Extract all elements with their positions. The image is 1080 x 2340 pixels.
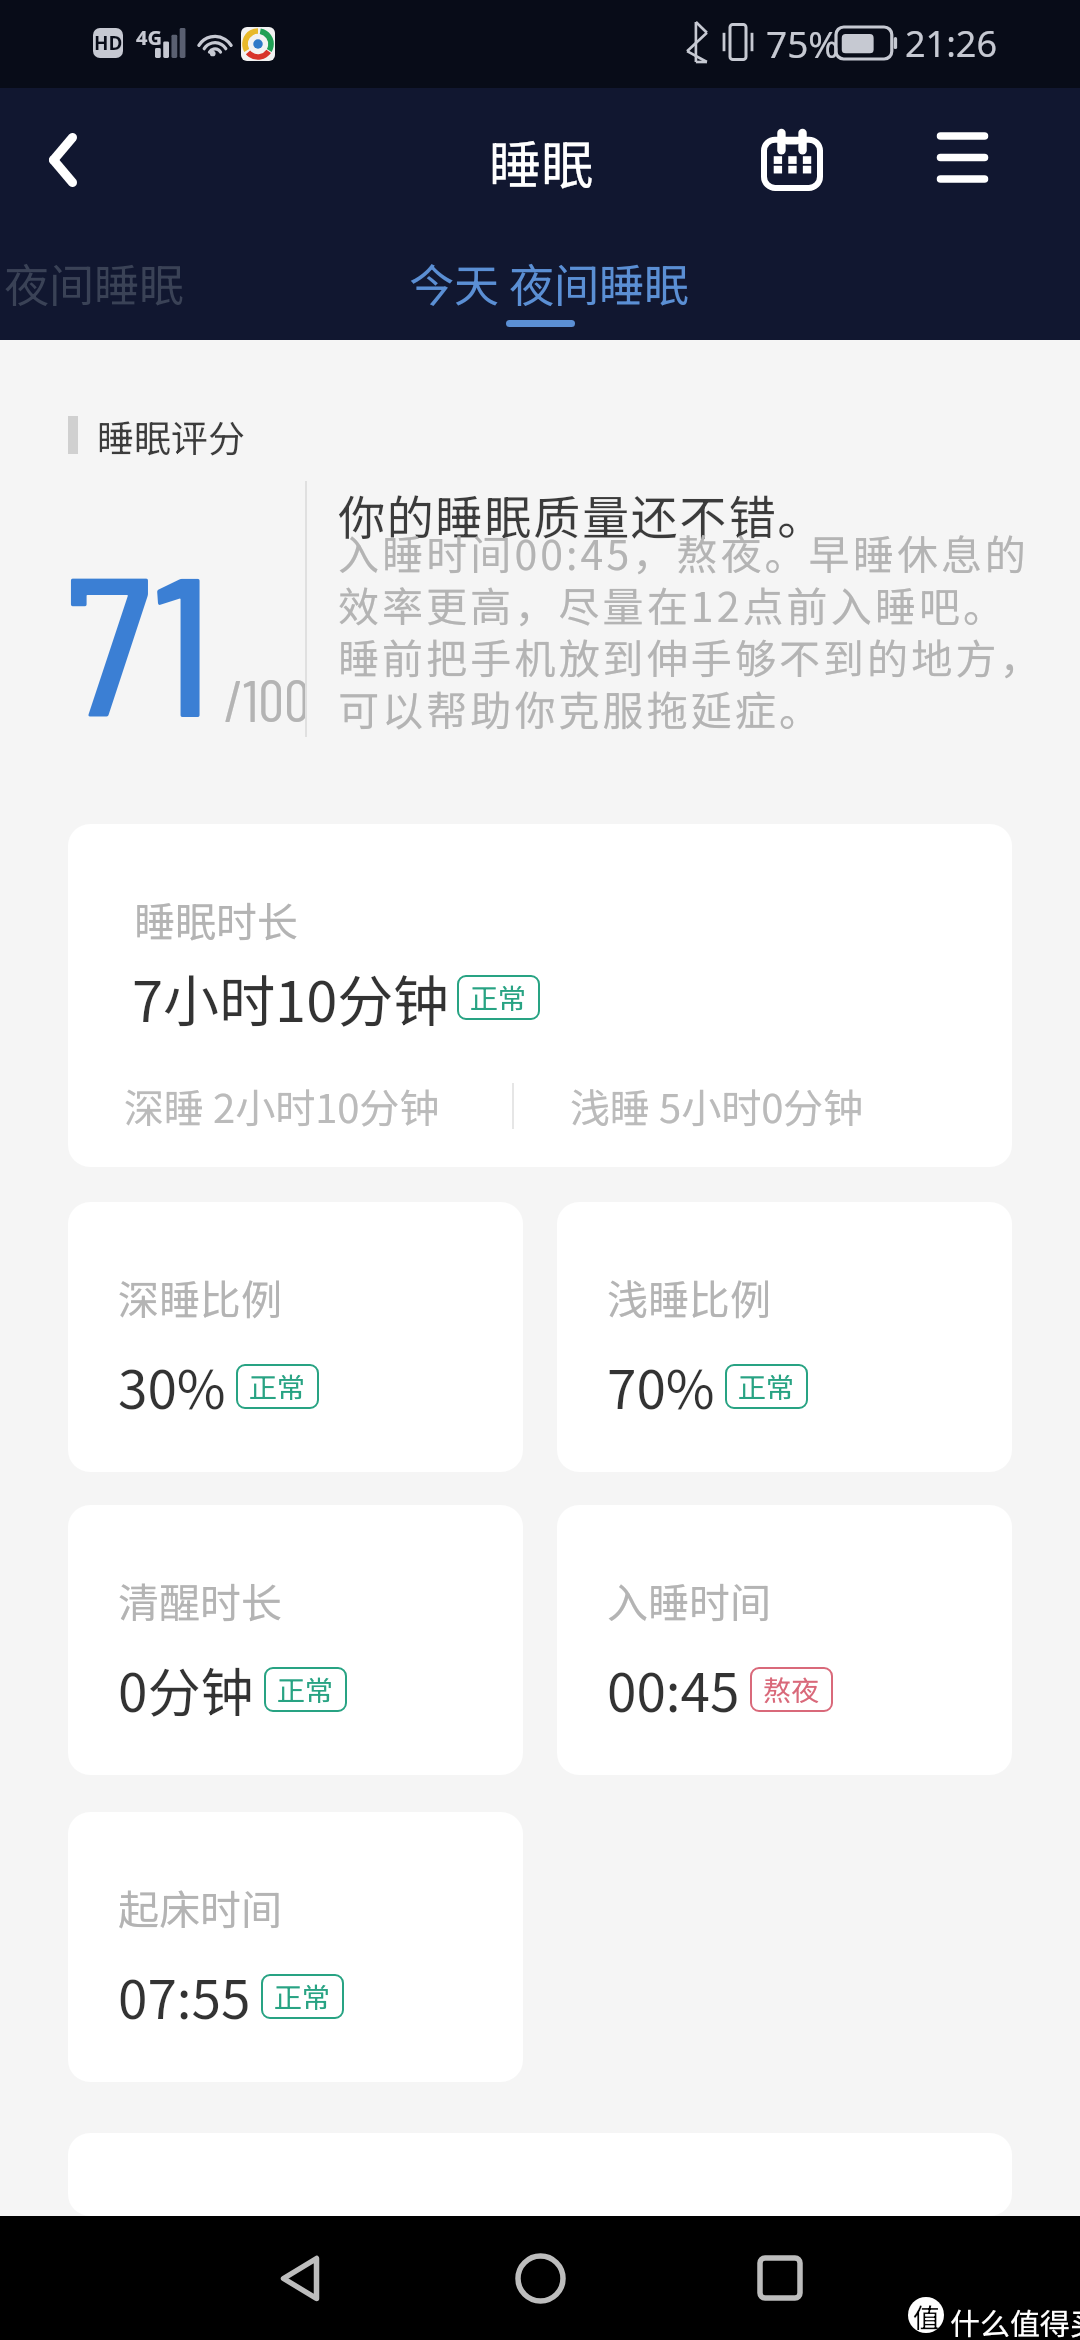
staticText: 75%: [766, 18, 840, 68]
button[interactable]: 浅睡比例: [557, 1202, 1012, 1472]
staticText: 入睡时间00:45，熬夜。早睡休息的 效率更高，尽量在12点前入睡吧。 睡前把手…: [338, 522, 1080, 737]
button[interactable]: 入睡时间: [557, 1505, 1012, 1775]
staticText: /100: [224, 664, 310, 734]
staticText: HD: [94, 30, 123, 56]
staticText: 70%: [607, 1348, 715, 1425]
staticText: 正常: [738, 1366, 795, 1407]
staticText: 正常: [249, 1366, 306, 1407]
staticText: 起床时间: [118, 1877, 282, 1936]
staticText: 清醒时长: [118, 1570, 282, 1629]
staticText: 00:45: [607, 1651, 740, 1728]
staticText: 71: [66, 519, 213, 757]
staticText: 睡眠评分: [97, 409, 245, 461]
staticText: 深睡比例: [118, 1267, 282, 1326]
button[interactable]: 深睡比例: [68, 1202, 523, 1472]
staticText: 正常: [274, 1976, 331, 2017]
button[interactable]: 清醒时长: [68, 1505, 523, 1775]
staticText: 入睡时间: [607, 1570, 771, 1629]
staticText: 深睡 2小时10分钟: [124, 1077, 440, 1135]
button[interactable]: Home: [480, 2216, 600, 2340]
staticText: 熬夜: [763, 1669, 820, 1710]
button[interactable]: 起床时间: [68, 1812, 523, 2082]
button[interactable]: Back: [8, 105, 118, 215]
staticText: 什么值得买: [950, 2300, 1080, 2340]
staticText: 07:55: [118, 1958, 251, 2035]
button[interactable]: Back: [240, 2216, 360, 2340]
staticText: 正常: [470, 977, 527, 1018]
button[interactable]: Calendar: [737, 107, 847, 217]
staticText: 浅睡比例: [607, 1267, 771, 1326]
staticText: 21:26: [905, 19, 998, 68]
button[interactable]: Recents: [720, 2216, 840, 2340]
staticText: 你的睡眠质量还不错。: [338, 480, 826, 548]
button[interactable]: 夜间睡眠: [4, 250, 185, 315]
staticText: 浅睡 5小时0分钟: [570, 1077, 864, 1135]
staticText: 4G: [136, 24, 162, 51]
staticText: 值: [913, 2297, 940, 2333]
button[interactable]: 今天 夜间睡眠: [409, 250, 690, 315]
staticText: 睡眠: [489, 124, 594, 199]
staticText: 睡眠时长: [134, 889, 298, 948]
button[interactable]: Menu: [907, 102, 1017, 212]
button[interactable]: 睡眠时长: [68, 824, 1012, 1167]
staticText: 0分钟: [118, 1651, 254, 1728]
staticText: 正常: [277, 1669, 334, 1710]
staticText: 7小时10分钟: [132, 957, 450, 1038]
staticText: 30%: [118, 1348, 226, 1425]
